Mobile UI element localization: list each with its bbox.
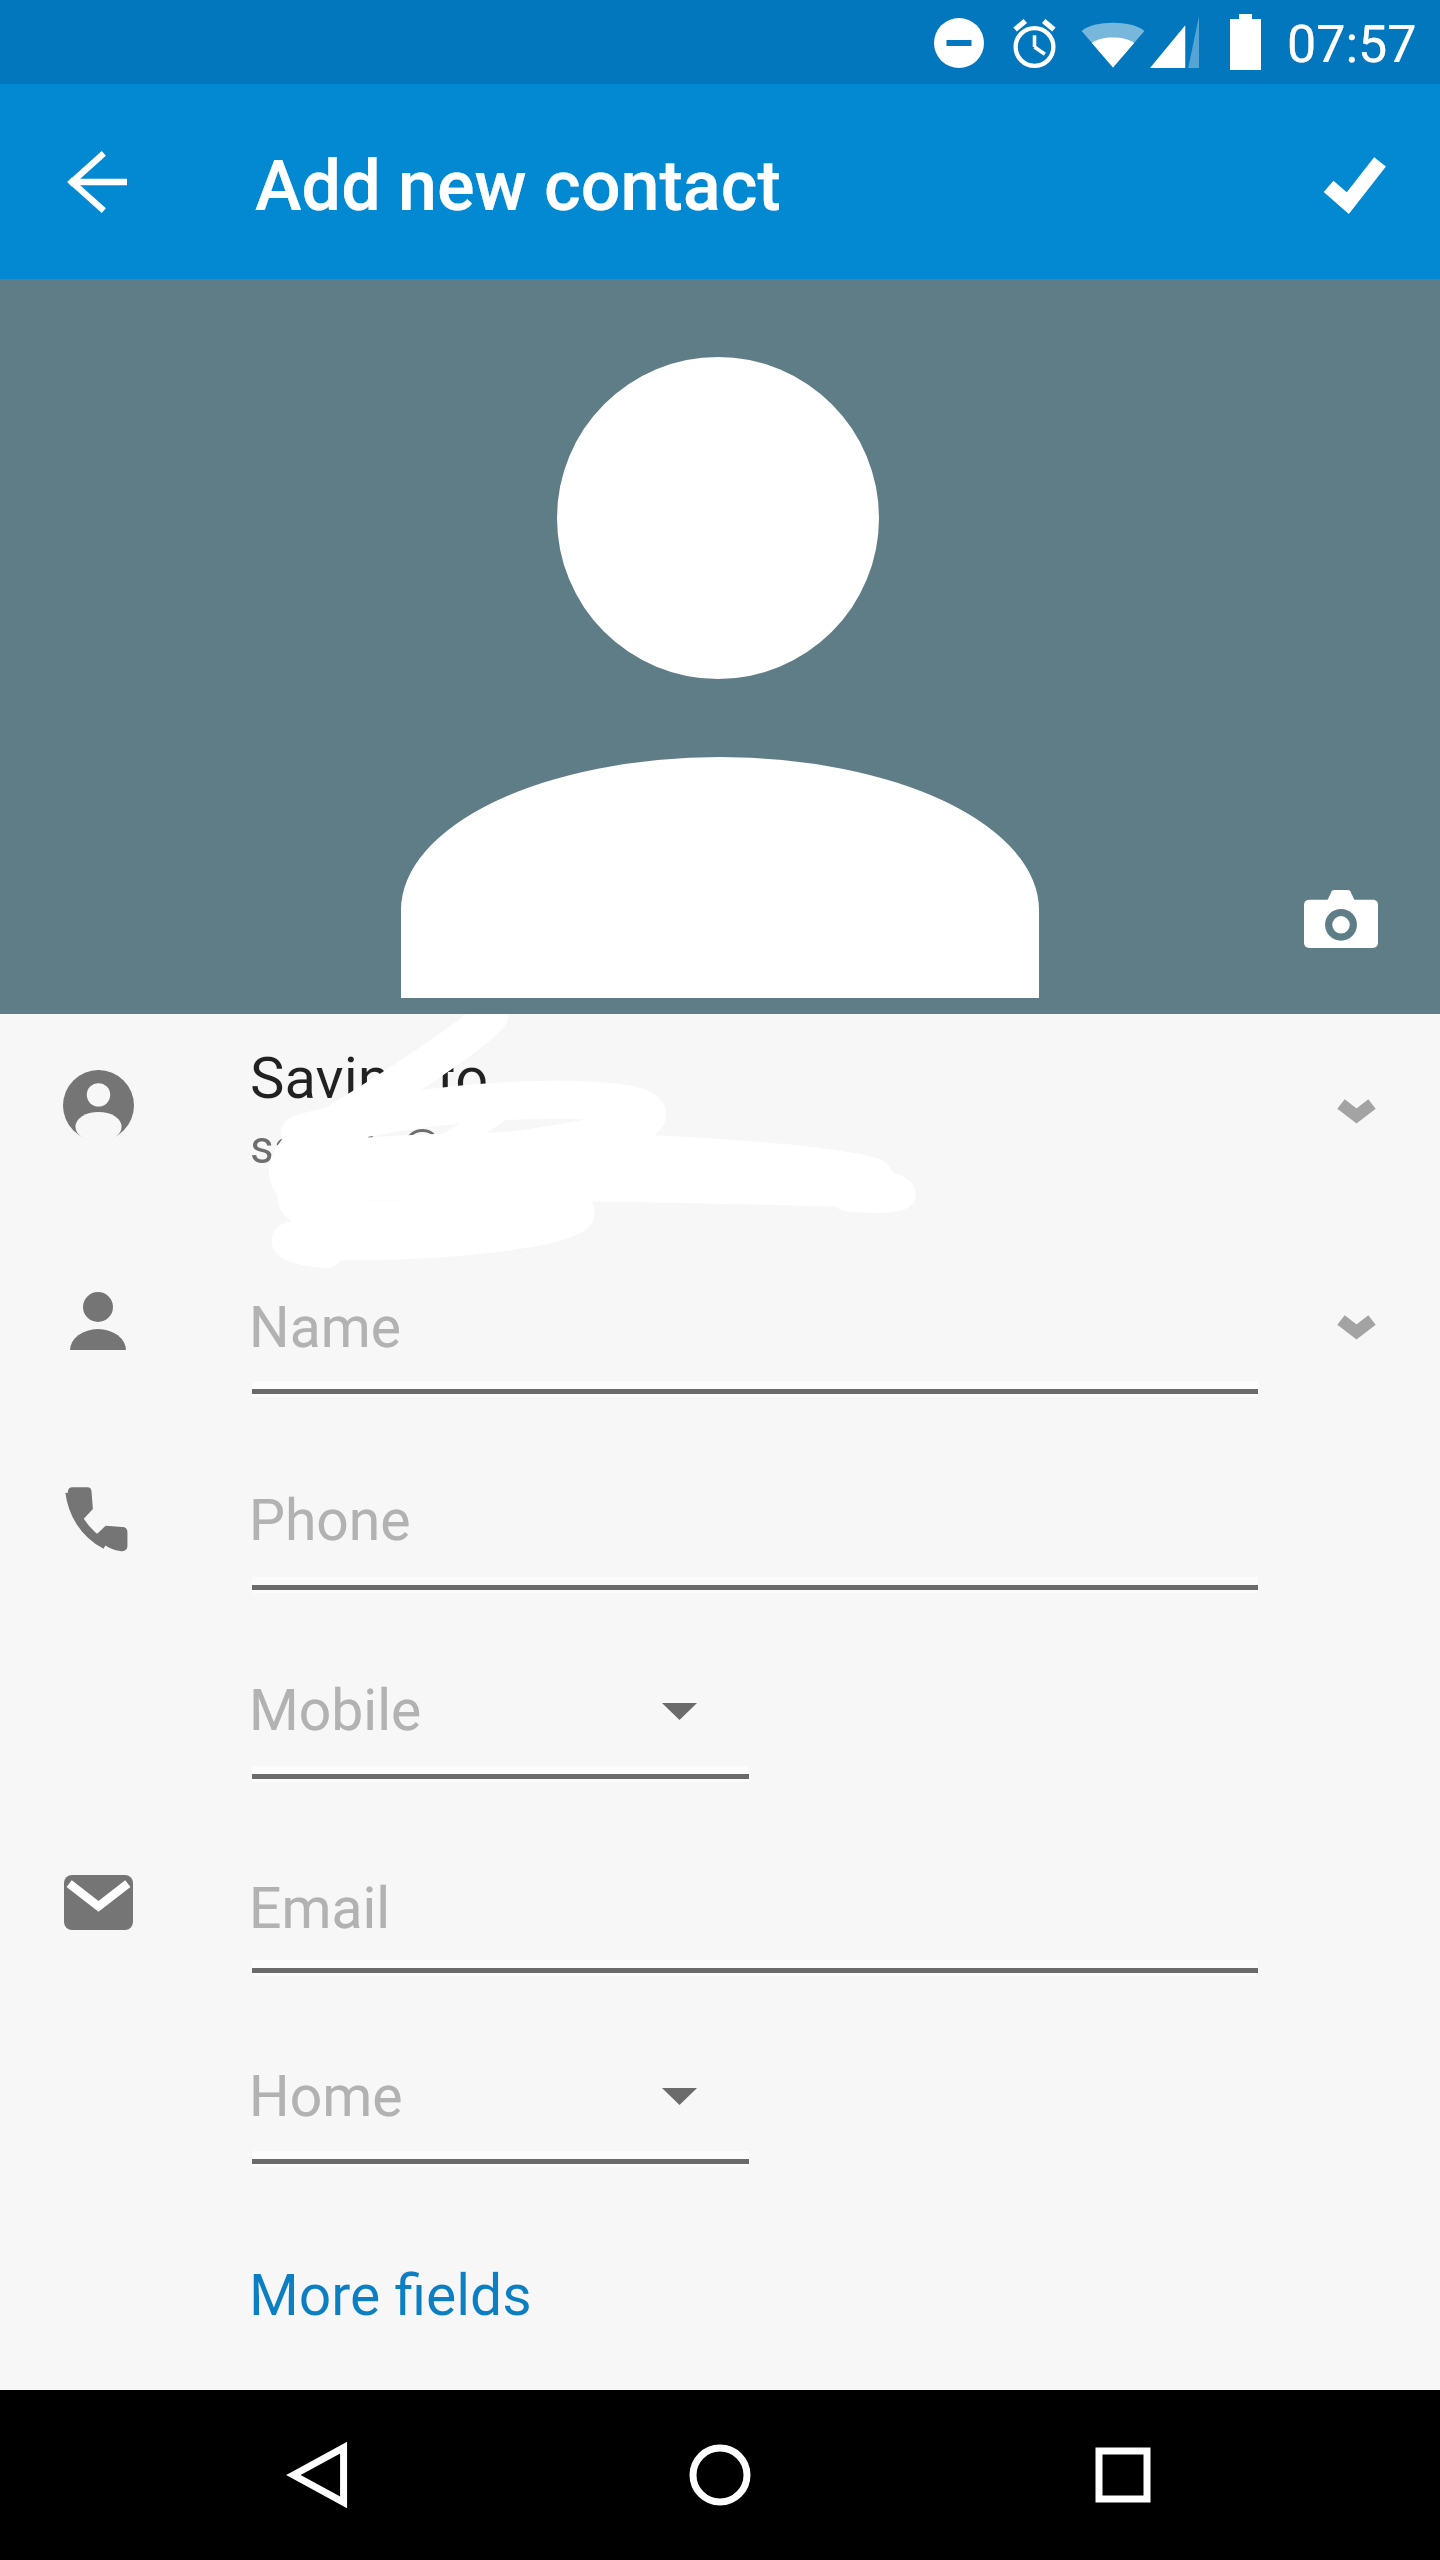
button[interactable]: More fields — [249, 2262, 532, 2329]
staticText: Add new contact — [255, 145, 781, 227]
button[interactable]: Email — [252, 1847, 1258, 1971]
staticText: sample@gmail.com — [250, 1120, 659, 1174]
button[interactable]: Expand name fields — [1296, 1266, 1416, 1386]
button[interactable]: Select type — [642, 1674, 716, 1748]
button[interactable]: Navigate up — [14, 98, 182, 266]
staticText: Home — [249, 2063, 403, 2130]
button[interactable]: Change photo — [1287, 865, 1395, 973]
staticText: Email — [249, 1875, 391, 1942]
staticText: Mobile — [249, 1677, 422, 1744]
button[interactable]: Back — [233, 2390, 403, 2560]
staticText: More fields — [249, 2262, 532, 2329]
button[interactable]: Choose account — [1296, 1050, 1416, 1170]
button[interactable]: Name — [252, 1266, 1258, 1392]
button[interactable]: Select type — [642, 2059, 716, 2133]
button[interactable]: Recent apps — [1038, 2390, 1208, 2560]
staticText: 07:57 — [1287, 14, 1417, 75]
staticText: Saving to — [250, 1044, 489, 1112]
button[interactable]: Phone — [252, 1459, 1258, 1588]
button[interactable]: Save contact — [1270, 98, 1438, 266]
button[interactable]: Home — [635, 2390, 805, 2560]
button[interactable]: Saving to — [0, 1014, 1440, 1288]
button[interactable]: Mobile — [252, 1649, 749, 1777]
staticText: Name — [249, 1294, 401, 1361]
button[interactable]: Home — [252, 2035, 749, 2162]
staticText: Phone — [249, 1487, 411, 1554]
